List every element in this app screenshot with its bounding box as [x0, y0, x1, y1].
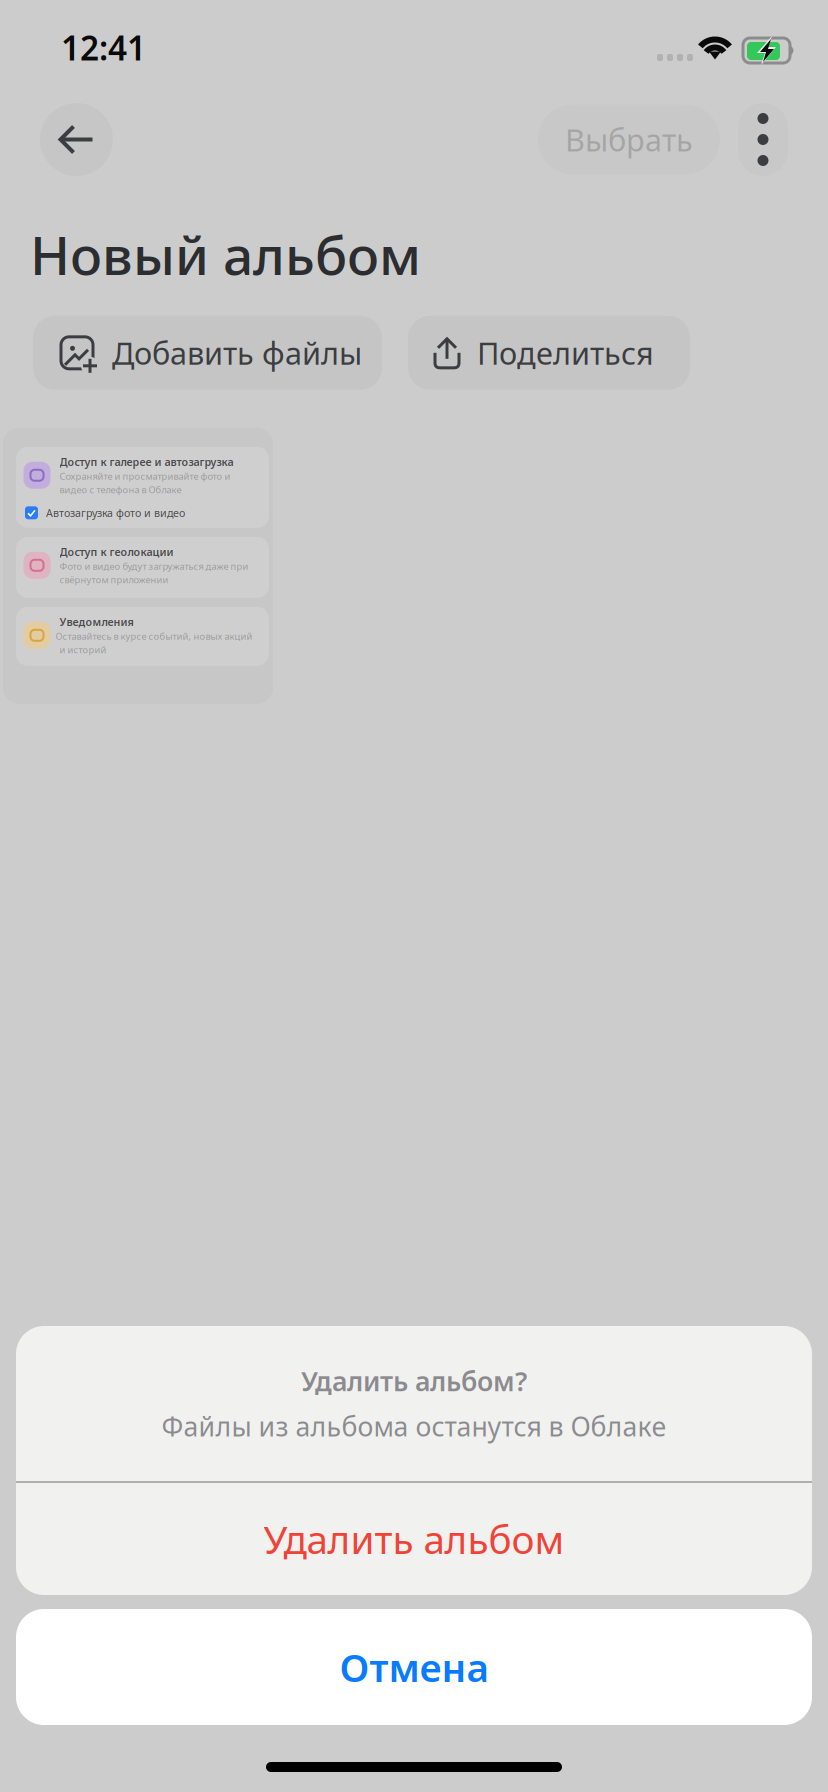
button[interactable]: Выбрать	[538, 104, 720, 174]
button[interactable]: More options	[738, 103, 788, 176]
staticText: свёрнутом приложении	[59, 573, 168, 586]
button[interactable]: Отмена	[16, 1609, 812, 1725]
staticText: Сохраняйте и просматривайте фото и	[59, 470, 230, 482]
staticText: Файлы из альбома останутся в Облаке	[161, 1408, 666, 1444]
staticText: видео с телефона в Облаке	[59, 483, 181, 496]
staticText: Доступ к геолокации	[59, 545, 173, 559]
staticText: Фото и видео будут загружаться даже при	[59, 560, 248, 572]
staticText: Доступ к галерее и автозагрузка	[59, 455, 233, 469]
button[interactable]: Добавить файлы	[33, 316, 382, 390]
staticText: Уведомления	[59, 615, 133, 629]
staticText: Добавить файлы	[112, 332, 362, 373]
staticText: 12:41	[61, 25, 146, 70]
staticText: Новый альбом	[30, 219, 421, 290]
staticText: и историй	[59, 643, 106, 656]
staticText: Отмена	[339, 1641, 488, 1693]
staticText: Выбрать	[565, 119, 693, 160]
staticText: Оставайтесь в курсе событий, новых акций	[55, 630, 252, 642]
button[interactable]: Поделиться	[408, 316, 690, 390]
staticText: Удалить альбом?	[301, 1363, 527, 1398]
button[interactable]: Back	[40, 103, 113, 176]
staticText: Удалить альбом	[263, 1513, 564, 1565]
staticText: Поделиться	[477, 332, 654, 373]
staticText: Автозагрузка фото и видео	[46, 506, 185, 520]
button[interactable]: Удалить альбом	[16, 1483, 812, 1595]
